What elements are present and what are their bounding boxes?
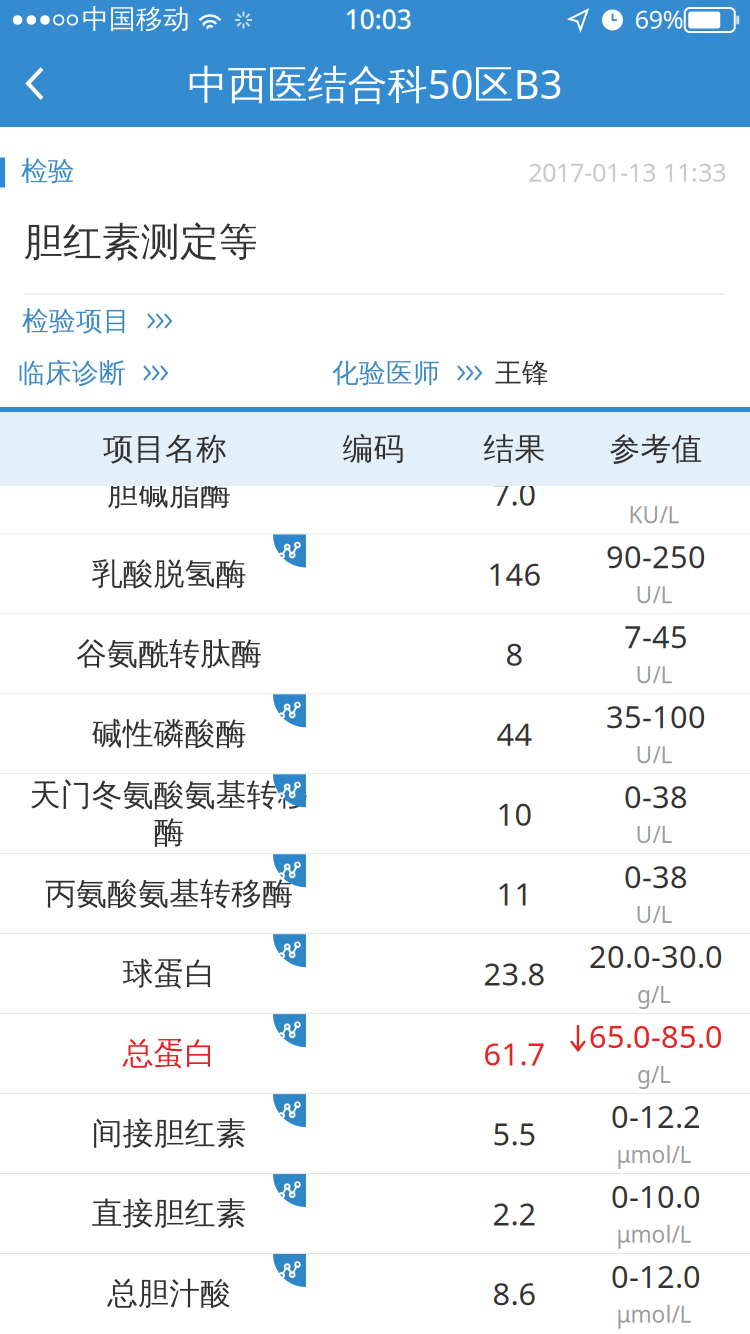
- button[interactable]: 丙氨酸氨基转移酶: [0, 854, 750, 934]
- staticText: 谷氨酰转肽酶: [76, 635, 262, 673]
- staticText: 65.0-85.0: [589, 1016, 723, 1056]
- staticText: 检验: [21, 155, 75, 187]
- staticText: 参考值: [609, 430, 702, 468]
- staticText: 胆碱脂酶: [107, 475, 231, 513]
- button[interactable]: Back: [0, 40, 70, 127]
- staticText: μmol/L: [616, 1139, 691, 1169]
- staticText: 中西医结合科50区B3: [187, 57, 562, 110]
- staticText: 结果: [483, 430, 545, 468]
- staticText: 乳酸脱氢酶: [91, 555, 246, 593]
- staticText: 7.0: [492, 474, 536, 514]
- staticText: U/L: [635, 659, 672, 689]
- staticText: 编码: [342, 430, 404, 468]
- staticText: 11: [496, 873, 532, 914]
- staticText: 胆红素测定等: [24, 218, 258, 266]
- button[interactable]: 胆碱脂酶: [0, 454, 750, 534]
- button[interactable]: 总蛋白: [0, 1014, 750, 1094]
- staticText: U/L: [635, 739, 672, 769]
- staticText: 0-12.2: [611, 1096, 701, 1136]
- button[interactable]: 谷氨酰转肽酶: [0, 614, 750, 694]
- button[interactable]: 化验医师: [328, 350, 558, 396]
- staticText: 8.6: [492, 1273, 536, 1314]
- staticText: 总蛋白: [122, 1035, 215, 1072]
- button[interactable]: 直接胆红素: [0, 1174, 750, 1254]
- button[interactable]: 天门冬氨酸氨基转移酶: [0, 774, 750, 854]
- staticText: 总胆汁酸: [107, 1275, 231, 1312]
- button[interactable]: 间接胆红素: [0, 1094, 750, 1174]
- staticText: 直接胆红素: [91, 1195, 246, 1232]
- staticText: 化验医师: [332, 357, 440, 389]
- staticText: μmol/L: [616, 1219, 691, 1249]
- staticText: 5.5: [492, 1113, 536, 1154]
- button[interactable]: 球蛋白: [0, 934, 750, 1014]
- staticText: 0-38: [624, 776, 688, 817]
- staticText: 天门冬氨酸氨基转移酶: [29, 776, 308, 851]
- staticText: U/L: [635, 899, 672, 929]
- staticText: 23.8: [483, 953, 545, 994]
- staticText: U/L: [635, 819, 672, 849]
- staticText: 0-38: [624, 856, 688, 897]
- staticText: 44: [496, 713, 532, 754]
- staticText: 2017-01-13 11:33: [528, 155, 726, 189]
- staticText: 35-100: [606, 696, 706, 737]
- staticText: 0-10.0: [611, 1176, 701, 1216]
- staticText: 69%: [634, 2, 683, 36]
- staticText: U/L: [635, 579, 672, 609]
- staticText: 0-12.0: [611, 1256, 701, 1296]
- staticText: μmol/L: [616, 1299, 691, 1329]
- button[interactable]: 总胆汁酸: [0, 1254, 750, 1334]
- staticText: 10: [496, 793, 532, 834]
- staticText: 90-250: [606, 536, 706, 577]
- staticText: 8: [505, 633, 523, 674]
- staticText: 项目名称: [103, 430, 227, 468]
- staticText: 临床诊断: [18, 357, 126, 389]
- staticText: 球蛋白: [122, 955, 215, 992]
- staticText: 7-45: [624, 616, 688, 657]
- button[interactable]: 临床诊断: [0, 350, 260, 396]
- staticText: 146: [487, 554, 541, 594]
- button[interactable]: 乳酸脱氢酶: [0, 534, 750, 614]
- button[interactable]: 检验项目: [0, 298, 260, 344]
- staticText: 2.2: [492, 1193, 536, 1234]
- staticText: 20.0-30.0: [589, 936, 723, 976]
- staticText: 间接胆红素: [91, 1115, 246, 1152]
- staticText: g/L: [637, 979, 671, 1009]
- staticText: 10:03: [344, 1, 411, 37]
- button[interactable]: 碱性磷酸酶: [0, 694, 750, 774]
- staticText: g/L: [637, 1059, 671, 1089]
- staticText: KU/L: [628, 499, 679, 529]
- staticText: 碱性磷酸酶: [91, 715, 246, 753]
- staticText: 王锋: [495, 357, 549, 389]
- staticText: 中国移动: [82, 3, 190, 35]
- staticText: 丙氨酸氨基转移酶: [45, 875, 293, 913]
- staticText: 61.7: [483, 1033, 545, 1074]
- staticText: 检验项目: [22, 305, 130, 337]
